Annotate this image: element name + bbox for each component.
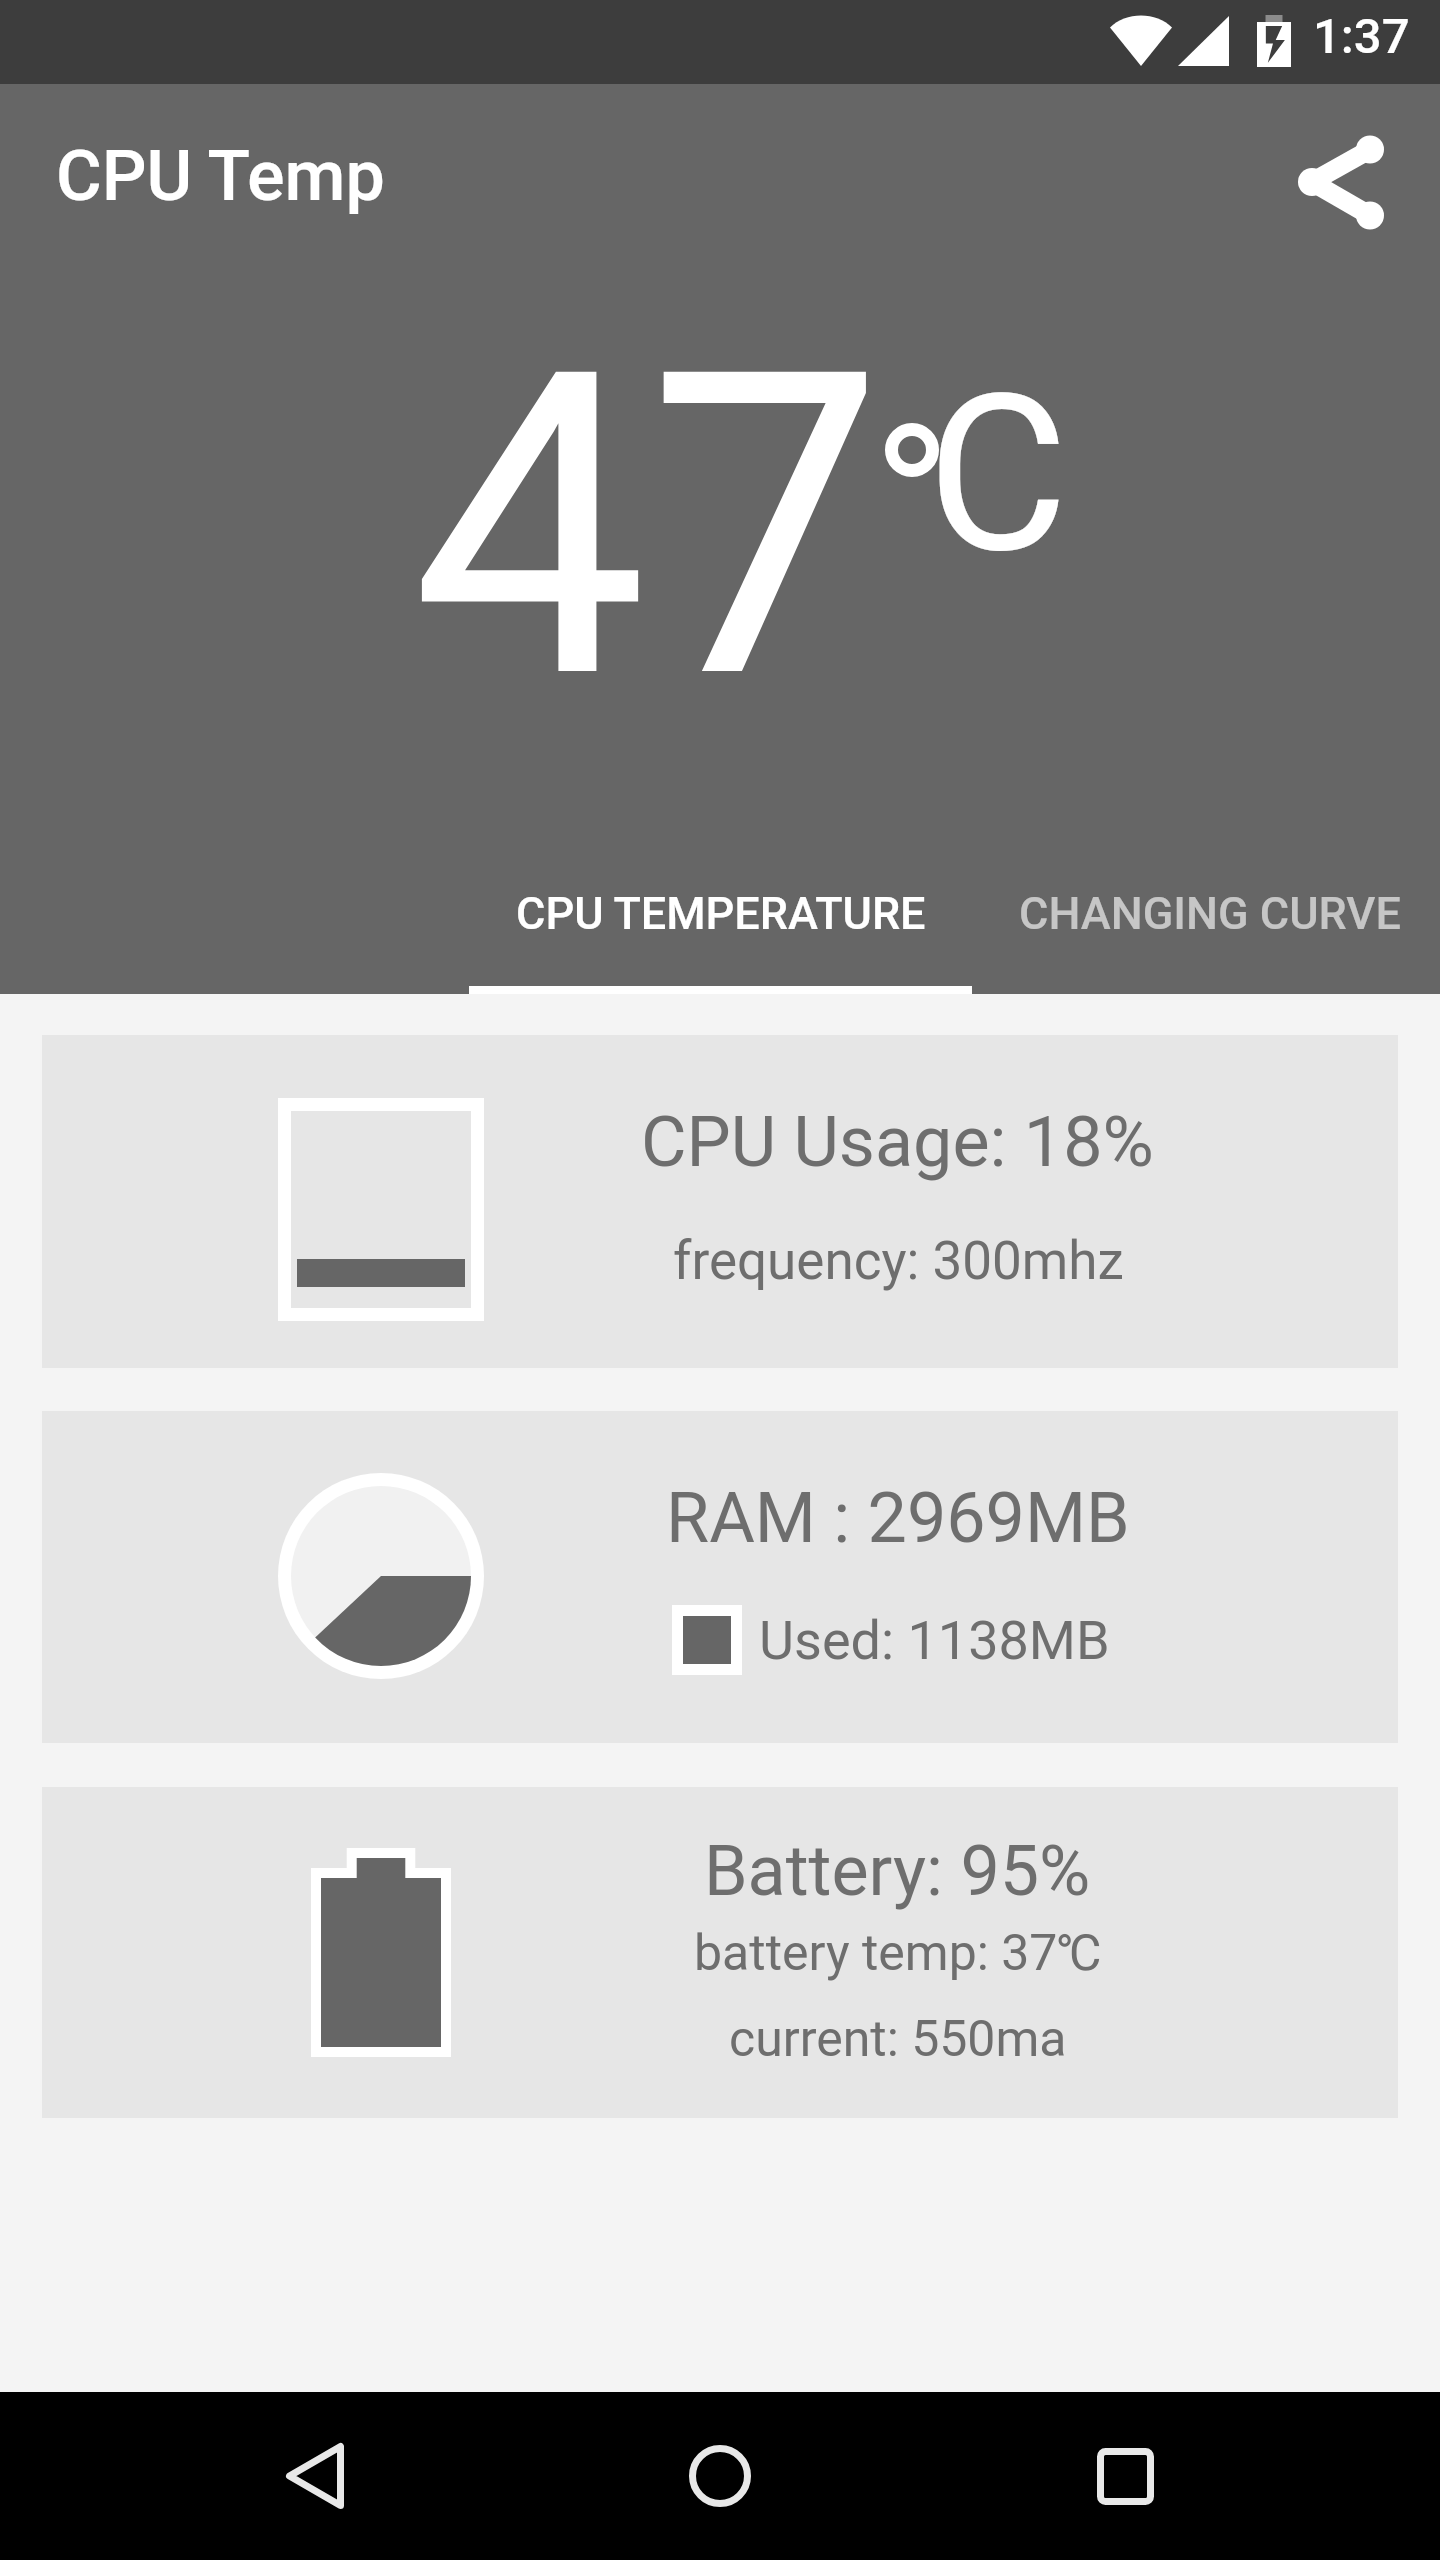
staticText: Battery: 95%: [704, 1830, 1091, 1912]
staticText: CPU Usage: 18%: [641, 1101, 1154, 1183]
button[interactable]: RAM : 2969MB: [42, 1411, 1398, 1743]
button[interactable]: CHANGING CURVE: [972, 823, 1440, 994]
button[interactable]: Back: [235, 2396, 395, 2556]
button[interactable]: Recent apps: [1045, 2396, 1205, 2556]
button[interactable]: CPU TEMPERATURE: [469, 823, 972, 994]
staticText: C: [927, 348, 1069, 602]
staticText: Used: 1138MB: [759, 1609, 1110, 1672]
staticText: CPU TEMPERATURE: [516, 887, 926, 940]
button[interactable]: Battery: 95%: [42, 1787, 1398, 2118]
staticText: frequency: 300mhz: [673, 1230, 1124, 1292]
staticText: battery temp: 37℃: [694, 1924, 1102, 1983]
staticText: RAM : 2969MB: [666, 1477, 1130, 1559]
staticText: 1:37: [1313, 8, 1410, 65]
staticText: CHANGING CURVE: [1019, 887, 1401, 940]
button[interactable]: CPU Usage: 18%: [42, 1035, 1398, 1368]
button[interactable]: Share: [1269, 110, 1413, 254]
button[interactable]: Home: [640, 2396, 800, 2556]
staticText: 47: [411, 280, 885, 773]
staticText: current: 550ma: [729, 2010, 1067, 2069]
staticText: CPU Temp: [56, 135, 385, 217]
